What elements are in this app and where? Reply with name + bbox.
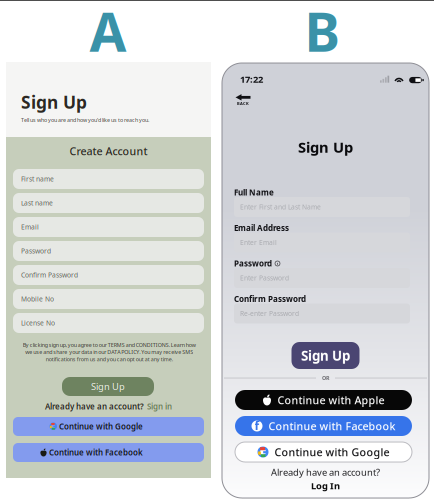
staticText: BACK [237,101,249,106]
staticText: f [254,418,259,434]
staticText: Create Account [69,144,147,158]
button[interactable]: Mobile No [13,289,204,309]
staticText: Sign Up [21,90,87,113]
staticText: B [304,0,339,66]
button[interactable]: Email [13,217,204,237]
button[interactable]: Back [234,93,252,107]
staticText: A [89,0,126,66]
button[interactable]: First name [13,169,204,189]
button[interactable]: Password [13,241,204,261]
staticText: License No [21,319,55,327]
button[interactable]: Log In [311,479,340,492]
button[interactable]: License No [13,313,204,333]
staticText: Log In [311,479,340,492]
button[interactable]: f [235,416,412,436]
staticText: Enter Password [240,274,289,282]
staticText: By clicking sign up, you agree to our TE… [22,341,195,363]
staticText: Sign Up [301,347,350,364]
staticText: Tell us who you are and how you'd like u… [21,116,149,124]
staticText: Password [21,247,51,255]
staticText: Last name [21,199,53,207]
staticText: Enter First and Last Name [240,203,321,211]
staticText: Continue with Google [59,421,143,432]
staticText: Sign Up [91,380,125,393]
button[interactable]: Sign in [147,401,172,412]
button[interactable]: Confirm Password [13,265,204,285]
staticText: Sign in [147,401,172,412]
staticText: Sign Up [298,137,353,157]
staticText: Re-enter Password [240,309,299,318]
button[interactable]: Continue with Apple [235,390,412,410]
staticText: Continue with Facebook [268,419,395,433]
staticText: Full Name [234,187,274,198]
staticText: First name [21,175,54,183]
button[interactable]: Continue with Google [13,417,204,436]
staticText: Enter Email [240,238,277,247]
staticText: 17:22 [240,73,263,85]
button[interactable]: Sign Up [291,342,359,369]
staticText: Already have an account? [45,401,144,412]
staticText: Confirm Password [21,271,78,279]
staticText: Confirm Password [234,294,306,304]
button[interactable]: Last name [13,193,204,213]
staticText: Continue with Apple [277,393,384,407]
staticText: Email [21,223,39,231]
staticText: Continue with Facebook [49,447,143,458]
staticText: Mobile No [21,295,54,303]
staticText: Already have an account? [271,466,380,478]
staticText: Password [234,258,272,269]
staticText: Continue with Google [274,445,389,459]
button[interactable]: Sign Up [62,377,154,396]
button[interactable]: Continue with Facebook [13,443,204,462]
staticText: OR [322,374,329,382]
button[interactable]: Continue with Google [235,442,412,462]
staticText: Email Address [234,223,289,233]
